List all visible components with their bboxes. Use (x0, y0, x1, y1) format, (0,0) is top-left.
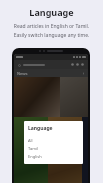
button[interactable]: All (28, 136, 80, 144)
staticText: Language (28, 125, 53, 132)
staticText: Language (0, 6, 103, 18)
button[interactable]: Menu (17, 63, 21, 67)
button[interactable] (14, 117, 48, 183)
button[interactable]: Search (70, 62, 75, 67)
button[interactable]: Notifications (75, 62, 80, 67)
button[interactable]: Tamil (28, 144, 80, 152)
button[interactable]: News (17, 69, 85, 77)
button[interactable] (48, 117, 82, 183)
button[interactable]: English (28, 152, 80, 160)
button[interactable] (23, 63, 70, 67)
staticText: News (17, 71, 28, 76)
staticText: Easily switch language any time. (0, 32, 103, 39)
staticText: Read articles in English or Tamil. (0, 23, 103, 30)
staticText: Tamil (28, 146, 38, 151)
staticText: English (28, 154, 42, 159)
button[interactable] (14, 77, 60, 117)
button[interactable] (60, 77, 88, 117)
staticText: All (28, 138, 33, 143)
button[interactable]: Profile (80, 62, 85, 67)
